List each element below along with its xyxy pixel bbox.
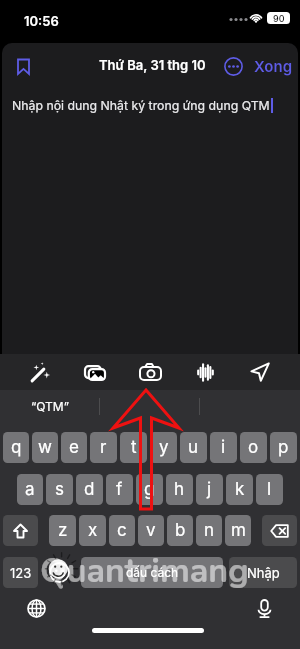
staticText: s (55, 479, 64, 500)
staticText: h (174, 479, 185, 500)
staticText: u (188, 437, 199, 458)
button[interactable]: z (49, 515, 76, 546)
staticText: o (248, 437, 259, 458)
button[interactable]: Photos (75, 354, 115, 390)
button[interactable]: Record audio (185, 354, 225, 390)
button[interactable]: d (76, 474, 103, 505)
staticText: “QTM” (31, 399, 69, 414)
staticText: 90 (273, 13, 285, 24)
button[interactable]: Bookmark (8, 51, 38, 81)
button[interactable]: h (166, 474, 193, 505)
button[interactable]: x (79, 515, 106, 546)
button[interactable]: p (270, 432, 297, 463)
staticText: x (88, 520, 98, 541)
button[interactable]: k (226, 474, 253, 505)
staticText: 10:56 (24, 13, 59, 29)
button[interactable]: w (32, 432, 58, 463)
button[interactable] (100, 390, 199, 423)
staticText: n (204, 520, 215, 541)
button[interactable]: r (90, 432, 117, 463)
button[interactable]: y (150, 432, 177, 463)
staticText: r (100, 437, 107, 458)
staticText: p (278, 437, 289, 458)
button[interactable]: v (138, 515, 164, 546)
button[interactable]: j (196, 474, 223, 505)
staticText: j (207, 479, 212, 500)
staticText: Nhập nội dung Nhật ký trong ứng dụng QTM (12, 98, 270, 113)
staticText: Thứ Ba, 31 thg 10 (99, 57, 206, 73)
staticText: d (84, 479, 95, 500)
button[interactable]: a (17, 474, 43, 505)
button[interactable]: Backspace (262, 515, 297, 546)
button[interactable]: u (180, 432, 207, 463)
button[interactable]: i (210, 432, 237, 463)
button[interactable]: f (106, 474, 133, 505)
button[interactable]: n (196, 515, 222, 546)
button[interactable]: More options (219, 52, 247, 80)
button[interactable]: g (136, 474, 163, 505)
button[interactable]: Shift (3, 515, 38, 546)
button[interactable]: m (225, 515, 251, 546)
staticText: i (221, 437, 226, 458)
staticText: Xong (254, 57, 293, 75)
button[interactable]: c (109, 515, 135, 546)
staticText: c (117, 520, 127, 541)
staticText: l (267, 479, 272, 500)
button[interactable]: Nhập (229, 557, 297, 588)
button[interactable]: Emoji (44, 557, 75, 588)
button[interactable]: t (120, 432, 147, 463)
staticText: a (25, 479, 35, 500)
button[interactable]: Change keyboard (21, 593, 51, 623)
staticText: 123 (10, 565, 32, 581)
button[interactable]: o (240, 432, 267, 463)
button[interactable]: q (3, 432, 29, 463)
staticText: v (146, 520, 156, 541)
button[interactable]: l (256, 474, 283, 505)
staticText: Quantrimang (40, 548, 249, 594)
button[interactable]: Xong (254, 52, 293, 80)
staticText: m (231, 520, 246, 541)
staticText: e (69, 437, 79, 458)
button[interactable]: b (167, 515, 193, 546)
button[interactable]: s (46, 474, 73, 505)
staticText: dấu cách (126, 565, 179, 580)
staticText: g (144, 479, 155, 500)
staticText: w (38, 437, 52, 458)
staticText: t (131, 437, 137, 458)
button[interactable]: Camera (130, 354, 170, 390)
button[interactable]: “QTM” (0, 390, 99, 423)
staticText: Nhập (247, 565, 280, 581)
button[interactable]: 123 (3, 557, 38, 588)
staticText: k (235, 479, 245, 500)
staticText: z (58, 520, 68, 541)
staticText: q (11, 437, 22, 458)
staticText: b (175, 520, 186, 541)
staticText: y (159, 437, 169, 458)
staticText: f (116, 479, 123, 500)
button[interactable]: Location (240, 354, 280, 390)
button[interactable]: e (61, 432, 87, 463)
button[interactable]: Dictation (249, 593, 279, 623)
button[interactable]: Markup (20, 354, 60, 390)
button[interactable]: dấu cách (81, 557, 223, 588)
